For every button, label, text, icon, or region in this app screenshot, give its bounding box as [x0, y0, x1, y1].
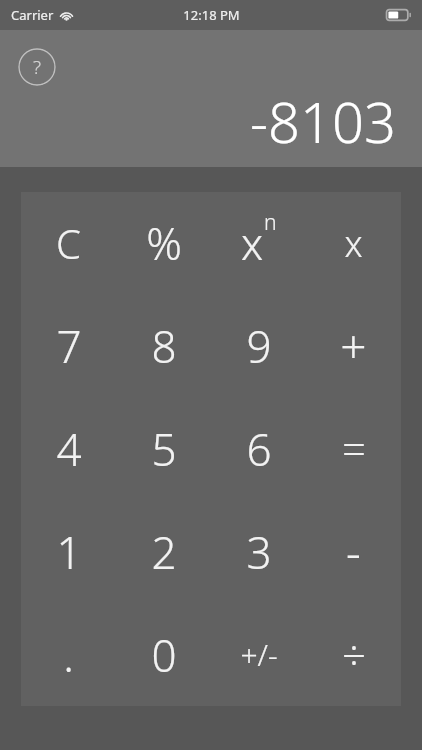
staticText: x [241, 213, 264, 273]
button[interactable]: - [306, 500, 401, 603]
button[interactable]: 1 [21, 500, 116, 603]
staticText: . [63, 625, 74, 685]
staticText: +/- [240, 634, 278, 675]
button[interactable]: 7 [21, 294, 116, 397]
staticText: 1 [56, 522, 82, 582]
button[interactable]: 9 [211, 294, 306, 397]
staticText: C [56, 216, 81, 270]
staticText: 6 [246, 419, 272, 479]
staticText: ÷ [342, 626, 366, 683]
button[interactable]: 6 [211, 397, 306, 500]
button[interactable]: 4 [21, 397, 116, 500]
staticText: 4 [56, 419, 82, 479]
staticText: Carrier [11, 6, 54, 24]
button[interactable]: x [211, 192, 306, 294]
staticText: x [344, 219, 363, 268]
staticText: 0 [151, 625, 177, 685]
staticText: 12:18 PM [183, 6, 240, 24]
button[interactable]: 5 [116, 397, 211, 500]
button[interactable]: . [21, 603, 116, 706]
button[interactable]: ÷ [306, 603, 401, 706]
button[interactable]: 8 [116, 294, 211, 397]
staticText: -8103 [250, 83, 396, 159]
button[interactable]: 0 [116, 603, 211, 706]
button[interactable]: Help [18, 48, 56, 86]
staticText: 3 [246, 522, 272, 582]
button[interactable]: x [306, 192, 401, 294]
staticText: 2 [151, 522, 177, 582]
button[interactable]: = [306, 397, 401, 500]
staticText: % [146, 213, 182, 273]
staticText: - [346, 520, 361, 583]
staticText: + [340, 314, 367, 377]
staticText: 8 [151, 316, 177, 376]
button[interactable]: +/- [211, 603, 306, 706]
button[interactable]: + [306, 294, 401, 397]
button[interactable]: 2 [116, 500, 211, 603]
staticText: 5 [151, 419, 177, 479]
staticText: n [264, 207, 277, 236]
button[interactable]: % [116, 192, 211, 294]
staticText: ? [33, 54, 42, 80]
staticText: 9 [246, 316, 272, 376]
button[interactable]: 3 [211, 500, 306, 603]
button[interactable]: C [21, 192, 116, 294]
staticText: 7 [56, 316, 82, 376]
staticText: = [342, 420, 366, 477]
